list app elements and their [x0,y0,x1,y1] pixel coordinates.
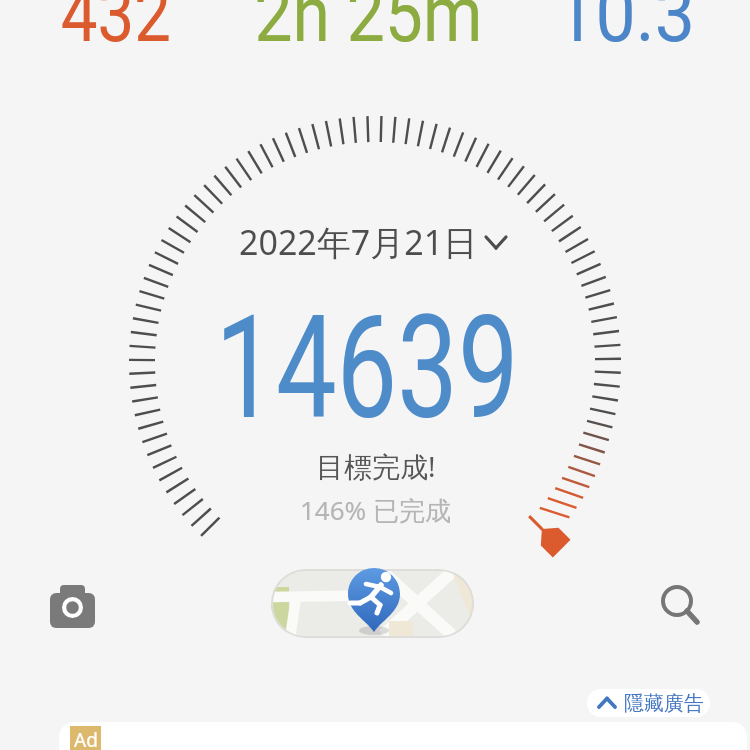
staticText: 146% 已完成 [300,492,451,528]
staticText: 目標完成! [316,447,436,485]
staticText: Ad [74,727,98,750]
button[interactable] [270,560,478,640]
button[interactable]: 隱藏廣告 [587,689,710,717]
staticText: 10.3 [555,0,696,60]
staticText: 隱藏廣告 [624,691,704,716]
staticText: 2h 25m [254,0,482,60]
staticText: 432 [61,0,171,60]
button[interactable] [233,215,523,267]
staticText: 2022年7月21日 [239,219,478,265]
staticText: 14639 [215,284,519,452]
button[interactable] [645,572,715,636]
button[interactable] [38,573,108,637]
button[interactable]: Ad [59,722,747,750]
